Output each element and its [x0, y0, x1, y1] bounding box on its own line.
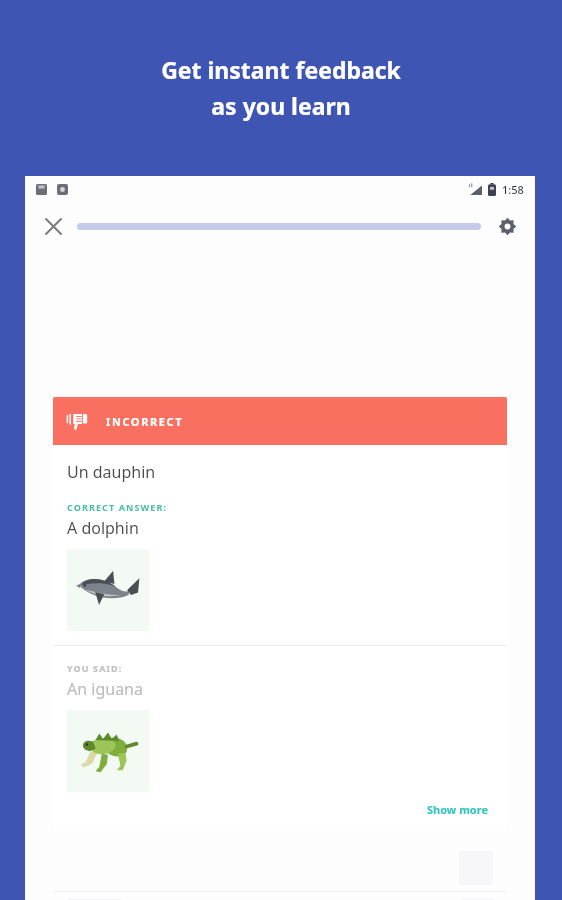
- staticText: Un dauphin: [67, 461, 156, 483]
- button[interactable]: Show more: [423, 798, 493, 821]
- staticText: CORRECT ANSWER:: [67, 501, 168, 513]
- staticText: A dolphin: [67, 517, 139, 539]
- button[interactable]: Close: [33, 206, 73, 246]
- staticText: as you learn: [211, 90, 351, 121]
- staticText: Get instant feedback: [161, 54, 401, 85]
- staticText: YOU SAID:: [67, 662, 123, 674]
- button[interactable]: Iguana illustration: [67, 710, 149, 792]
- staticText: Show more: [427, 802, 489, 817]
- staticText: An iguana: [67, 678, 143, 700]
- staticText: INCORRECT: [106, 414, 184, 429]
- button[interactable]: Settings: [487, 206, 527, 246]
- button[interactable]: Dolphin illustration: [67, 549, 149, 631]
- staticText: 1:58: [502, 182, 524, 197]
- button[interactable]: INCORRECT: [53, 397, 507, 445]
